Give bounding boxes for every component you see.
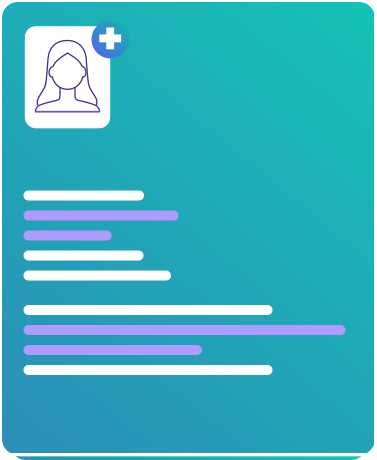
button[interactable]: Add profile photo bbox=[1, 0, 376, 457]
